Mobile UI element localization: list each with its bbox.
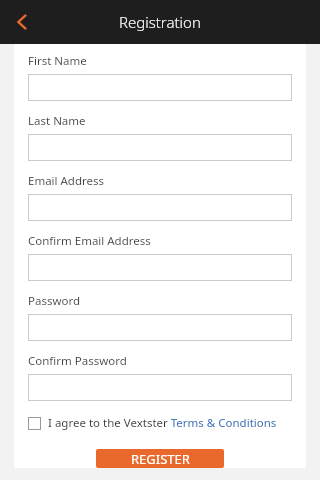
button[interactable]: [28, 314, 292, 341]
button[interactable]: [28, 374, 292, 401]
button[interactable]: [28, 74, 292, 101]
staticText: Last Name: [28, 113, 86, 129]
staticText: REGISTER: [131, 450, 190, 468]
button[interactable]: [28, 134, 292, 161]
staticText: Email Address: [28, 173, 105, 189]
button[interactable]: REGISTER: [96, 449, 224, 468]
button[interactable]: [28, 254, 292, 281]
staticText: Confirm Email Address: [28, 233, 151, 249]
staticText: Confirm Password: [28, 353, 127, 369]
button[interactable]: Back: [0, 0, 44, 44]
staticText: First Name: [28, 53, 87, 69]
staticText: I agree to the Vextster Terms & Conditio…: [48, 415, 277, 431]
staticText: Registration: [119, 12, 201, 32]
button[interactable]: [28, 194, 292, 221]
button[interactable]: I agree to the Vextster Terms & Conditio…: [28, 415, 292, 431]
staticText: Password: [28, 293, 81, 309]
